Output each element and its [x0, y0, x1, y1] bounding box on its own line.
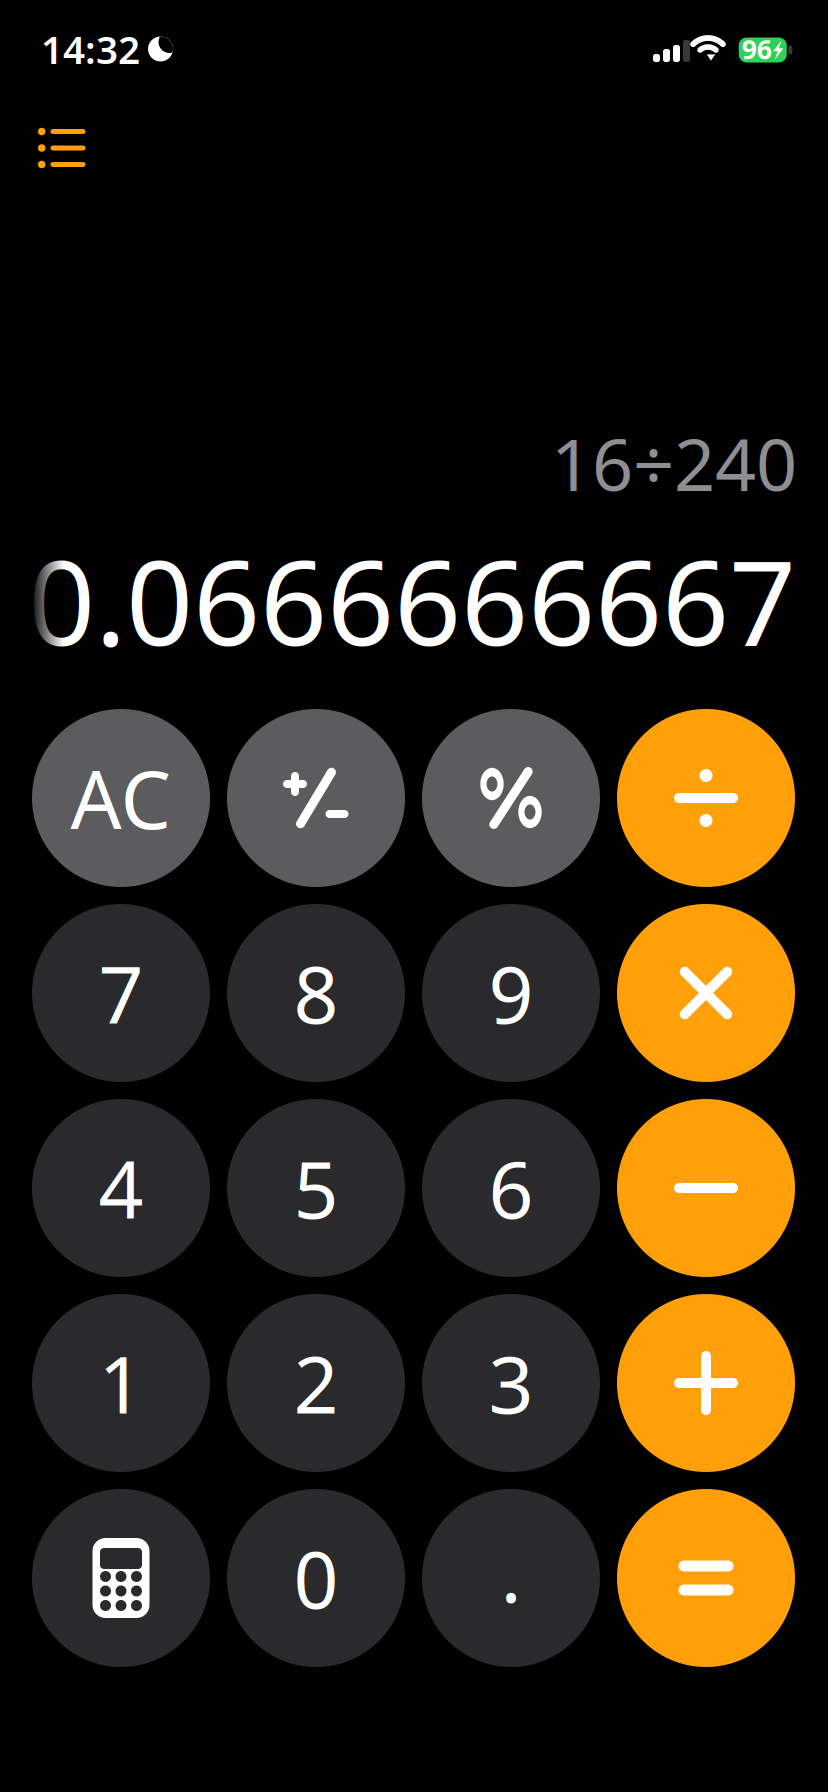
- button[interactable]: Plus minus: [227, 709, 405, 887]
- staticText: 9: [488, 941, 533, 1045]
- button[interactable]: Percent: [422, 709, 600, 887]
- staticText: 7: [98, 941, 143, 1045]
- staticText: 14:32: [41, 23, 140, 75]
- staticText: 1: [98, 1331, 143, 1435]
- button[interactable]: AC: [32, 709, 210, 887]
- button[interactable]: 6: [422, 1099, 600, 1277]
- button[interactable]: Multiply: [617, 904, 795, 1082]
- staticText: 96: [742, 31, 772, 67]
- staticText: 6: [488, 1136, 533, 1240]
- button[interactable]: Minus: [617, 1099, 795, 1277]
- button[interactable]: 7: [32, 904, 210, 1082]
- staticText: AC: [70, 745, 171, 851]
- staticText: 0: [293, 1526, 338, 1630]
- button[interactable]: Calculator: [32, 1489, 210, 1667]
- button[interactable]: History: [0, 104, 96, 192]
- staticText: 3: [488, 1331, 533, 1435]
- button[interactable]: 0: [227, 1489, 405, 1667]
- staticText: 2: [293, 1331, 338, 1435]
- button[interactable]: 2: [227, 1294, 405, 1472]
- button[interactable]: 3: [422, 1294, 600, 1472]
- staticText: 0.0666666667: [28, 522, 796, 678]
- staticText: 5: [293, 1136, 338, 1240]
- staticText: 8: [293, 941, 338, 1045]
- button[interactable]: 8: [227, 904, 405, 1082]
- button[interactable]: Divide: [617, 709, 795, 887]
- staticText: .: [500, 1520, 521, 1624]
- button[interactable]: 1: [32, 1294, 210, 1472]
- staticText: 16÷240: [551, 415, 797, 511]
- button[interactable]: Equals: [617, 1489, 795, 1667]
- staticText: 4: [98, 1136, 143, 1240]
- button[interactable]: 4: [32, 1099, 210, 1277]
- button[interactable]: 5: [227, 1099, 405, 1277]
- button[interactable]: .: [422, 1489, 600, 1667]
- button[interactable]: 9: [422, 904, 600, 1082]
- button[interactable]: Plus: [617, 1294, 795, 1472]
